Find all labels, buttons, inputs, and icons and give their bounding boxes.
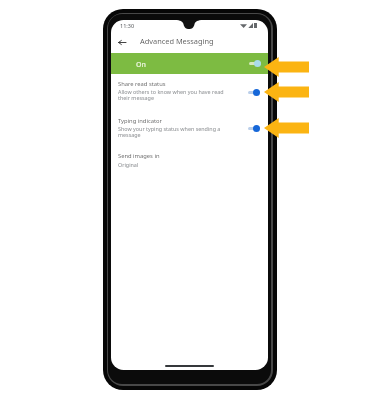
button[interactable]: Toggle — [247, 88, 261, 97]
staticText: Typing indicator — [118, 117, 162, 125]
button[interactable]: Typing indicator — [111, 116, 268, 144]
button[interactable]: Send images in — [111, 149, 268, 171]
staticText: On — [136, 60, 146, 70]
button[interactable]: Toggle — [248, 59, 262, 68]
staticText: Allow others to know when you have read — [118, 88, 224, 95]
staticText: Share read status — [118, 80, 166, 88]
staticText: Original — [118, 161, 139, 168]
staticText: 11:30 — [120, 22, 135, 29]
button[interactable]: Toggle — [247, 124, 261, 133]
staticText: message — [118, 131, 141, 138]
button[interactable]: Share read status — [111, 79, 268, 107]
staticText: Send images in — [118, 152, 160, 160]
button[interactable]: On — [111, 53, 268, 74]
staticText: Advanced Messaging — [140, 36, 214, 46]
staticText: Show your typing status when sending a — [118, 125, 221, 132]
button[interactable]: Back — [115, 36, 128, 49]
staticText: their message — [118, 94, 154, 101]
